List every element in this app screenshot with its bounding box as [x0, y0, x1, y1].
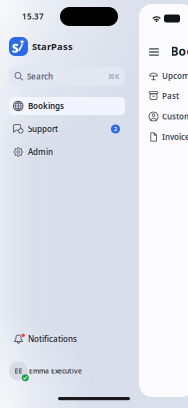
- button[interactable]: Support: [9, 120, 125, 138]
- staticText: Customers: [162, 111, 188, 122]
- staticText: Invoices: [162, 132, 188, 142]
- staticText: 2: [114, 125, 117, 133]
- button[interactable]: Search: [9, 67, 125, 86]
- staticText: Bookings: [28, 101, 64, 111]
- staticText: S: [12, 40, 19, 56]
- staticText: Admin: [28, 147, 53, 157]
- button[interactable]: Customers: [149, 106, 188, 126]
- button[interactable]: Invoices: [149, 127, 188, 147]
- staticText: Search: [27, 71, 53, 82]
- button[interactable]: Upcoming: [149, 66, 188, 86]
- button[interactable]: Notifications: [9, 330, 125, 348]
- staticText: StarPass: [32, 40, 73, 53]
- button[interactable]: EE: [9, 360, 125, 382]
- staticText: ⌘K: [108, 72, 119, 81]
- staticText: Emma Executive: [29, 367, 82, 375]
- button[interactable]: Admin: [9, 143, 125, 161]
- button[interactable]: Bookings: [9, 97, 125, 115]
- button[interactable]: Past: [149, 86, 188, 106]
- button[interactable]: S: [9, 36, 129, 56]
- staticText: 15.37: [22, 11, 44, 22]
- button[interactable]: Menu: [146, 44, 162, 60]
- staticText: Notifications: [28, 334, 77, 344]
- staticText: EE: [14, 367, 22, 375]
- staticText: Support: [28, 124, 58, 134]
- staticText: Bookings: [170, 43, 188, 59]
- staticText: Past: [162, 91, 179, 101]
- staticText: Upcoming: [162, 71, 188, 81]
